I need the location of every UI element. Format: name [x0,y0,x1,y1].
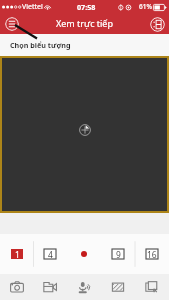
button[interactable]: Options [150,17,165,32]
button[interactable]: Video [33,274,67,300]
staticText: 9 [116,249,121,259]
staticText: Chọn biểu tượng [10,40,71,50]
button[interactable]: Effects [101,274,135,300]
button[interactable]: Layout 9 [101,234,135,274]
button[interactable]: Menu [5,17,19,31]
button[interactable]: Close [135,274,169,300]
button[interactable]: Record [67,234,101,274]
staticText: Xem trực tiếp [56,17,113,29]
staticText: 61% [139,2,152,11]
staticText: 4 [48,249,53,259]
button[interactable]: Layout 4 [33,234,67,274]
button[interactable]: Photo [0,274,33,300]
staticText: Viettel [22,2,43,12]
staticText: 1 [15,249,20,259]
button[interactable]: Audio [67,274,101,300]
staticText: 07:58 [77,2,96,12]
button[interactable]: Layout 1 [0,234,33,274]
staticText: 16 [147,249,157,259]
button[interactable]: Layout 16 [135,234,169,274]
